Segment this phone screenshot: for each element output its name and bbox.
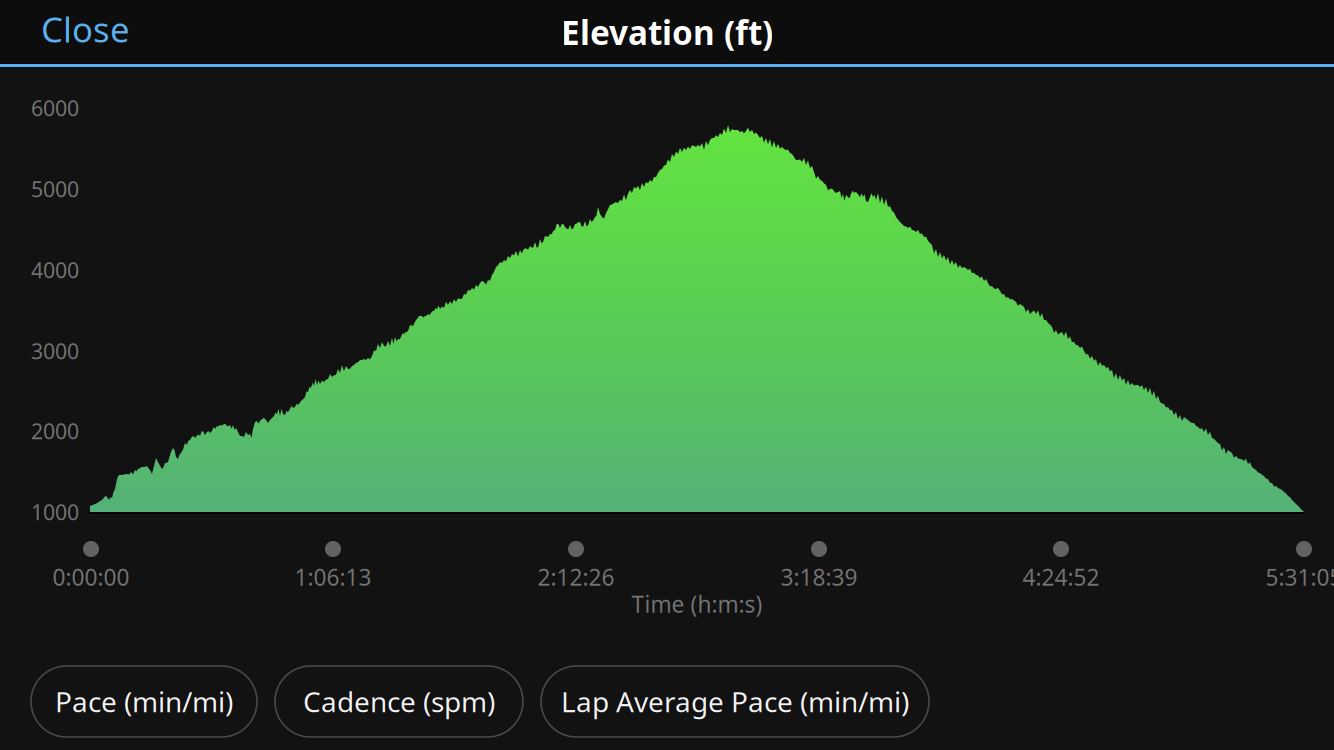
button[interactable]: Pace (min/mi) xyxy=(31,666,257,737)
staticText: Time (h:m:s) xyxy=(631,589,762,619)
staticText: Close xyxy=(41,6,130,52)
staticText: Cadence (spm) xyxy=(303,683,495,720)
staticText: Elevation (ft) xyxy=(561,10,773,54)
staticText: 2:12:26 xyxy=(537,562,614,592)
staticText: 3:18:39 xyxy=(780,562,857,592)
staticText: 5:31:05 xyxy=(1265,562,1334,592)
button[interactable]: Lap Average Pace (min/mi) xyxy=(541,666,929,737)
button[interactable]: Cadence (spm) xyxy=(275,666,523,737)
staticText: 1000 xyxy=(31,498,79,526)
staticText: 6000 xyxy=(31,94,79,122)
staticText: 1:06:13 xyxy=(294,562,371,592)
staticText: 4:24:52 xyxy=(1022,562,1099,592)
staticText: 4000 xyxy=(31,256,79,284)
staticText: 5000 xyxy=(31,175,79,203)
staticText: 0:00:00 xyxy=(52,562,129,592)
button[interactable]: Close xyxy=(41,4,161,54)
staticText: 3000 xyxy=(31,337,79,365)
staticText: 2000 xyxy=(31,417,79,445)
staticText: Pace (min/mi) xyxy=(55,683,233,720)
staticText: Lap Average Pace (min/mi) xyxy=(561,683,909,720)
